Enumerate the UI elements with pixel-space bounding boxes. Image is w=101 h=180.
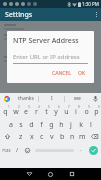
button[interactable]: thanks [14,93,38,104]
staticText: x [30,132,34,142]
staticText: r [35,107,38,117]
button[interactable]: ?123 [0,143,12,157]
button[interactable]: 4 [31,104,41,117]
staticText: v [50,132,54,142]
button[interactable]: s [16,117,26,130]
staticText: . [80,145,82,153]
staticText: NTP Server Address [13,36,79,46]
staticText: g [49,120,54,130]
button[interactable]: Enter [86,143,101,157]
staticText: i [75,107,77,117]
button[interactable]: m [77,130,87,143]
staticText: k [79,120,83,130]
staticText: u [64,107,69,117]
staticText: CANCEL [52,70,71,77]
button[interactable]: f [36,117,46,130]
staticText: Enter URL or IP address [13,53,80,61]
staticText: 2 [18,105,20,109]
staticText: y [54,107,58,117]
staticText: h [59,120,64,130]
button[interactable]: c [37,130,47,143]
staticText: w [13,107,19,117]
staticText: 1 [8,105,10,109]
staticText: l [90,120,92,130]
staticText: d [29,120,34,130]
staticText: I [51,95,53,102]
button[interactable]: Google [0,93,14,104]
button[interactable]: 1 [0,104,11,117]
button[interactable]: . [76,143,86,157]
staticText: n [70,132,75,142]
button[interactable]: More options [91,8,101,21]
button[interactable]: x [26,130,37,143]
button[interactable]: n [67,130,77,143]
button[interactable]: 7 [61,104,71,117]
button[interactable]: d [26,117,36,130]
button[interactable]: Enter URL or IP address [13,53,88,64]
staticText: p [94,107,99,117]
button[interactable]: Back [19,168,40,180]
button[interactable]: g [46,117,56,130]
button[interactable]: Recent apps [61,168,82,180]
staticText: thanks [18,95,34,102]
button[interactable]: 0 [91,104,101,117]
staticText: 9 [88,105,90,109]
staticText: 8 [78,105,80,109]
button[interactable]: z [15,130,26,143]
button[interactable]: Space [32,143,76,157]
button[interactable]: I [39,93,64,104]
button[interactable]: CANCEL [50,69,73,78]
staticText: q [3,107,8,117]
button[interactable]: 2 [11,104,21,117]
staticText: a [9,120,13,130]
staticText: Settings [5,10,33,20]
button[interactable]: a [5,117,16,130]
button[interactable]: h [56,117,66,130]
button[interactable]: 6 [51,104,61,117]
staticText: 1:30 PM [82,1,99,7]
staticText: 5 [48,105,50,109]
staticText: o [84,107,89,117]
button[interactable]: b [57,130,67,143]
button[interactable]: / [12,143,22,157]
button[interactable]: Voice input [90,93,101,104]
staticText: 4 [38,105,40,109]
staticText: m [79,132,86,142]
staticText: b [60,132,65,142]
staticText: 6 [58,105,60,109]
staticText: 3 [28,105,30,109]
button[interactable]: we [65,93,90,104]
button[interactable]: 5 [41,104,51,117]
button[interactable]: j [66,117,76,130]
staticText: 7 [68,105,70,109]
staticText: ?123 [2,148,11,153]
button[interactable]: Shift [0,130,15,143]
staticText: e [24,107,28,117]
staticText: j [70,120,72,130]
button[interactable]: 3 [21,104,31,117]
button[interactable]: 8 [71,104,81,117]
staticText: z [19,132,23,142]
button[interactable]: Backspace [87,130,101,143]
staticText: s [19,120,23,130]
button[interactable]: k [76,117,86,130]
button[interactable]: Emoji [22,143,32,157]
staticText: t [45,107,48,117]
button[interactable]: Home [40,168,61,180]
button[interactable]: OK [76,69,88,78]
staticText: we [74,95,81,102]
button[interactable]: 9 [81,104,91,117]
staticText: f [40,120,43,130]
staticText: / [16,146,19,154]
button[interactable]: l [86,117,96,130]
staticText: c [40,132,44,142]
button[interactable]: v [47,130,57,143]
staticText: OK [78,70,86,77]
staticText: 0 [98,105,100,109]
